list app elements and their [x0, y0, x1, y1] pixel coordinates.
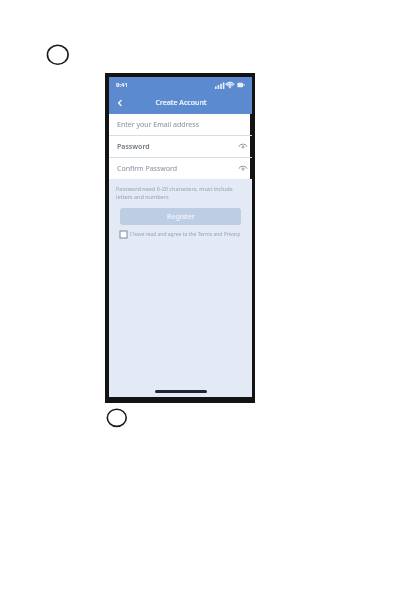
- staticText: 9:41: [116, 81, 128, 89]
- staticText: Confirm Password: [117, 164, 178, 174]
- button[interactable]: Show password: [237, 141, 248, 152]
- button[interactable]: Back: [113, 96, 127, 110]
- staticText: I have read and agree to the Terms and P…: [130, 231, 241, 238]
- staticText: Password: [117, 142, 150, 152]
- button[interactable]: Register: [120, 208, 241, 225]
- staticText: Register: [167, 212, 195, 222]
- button[interactable]: I have read and agree to the Terms and P…: [120, 231, 241, 238]
- button[interactable]: Enter your Email address: [109, 114, 252, 135]
- button[interactable]: Confirm Password: [109, 158, 252, 179]
- staticText: Enter your Email address: [117, 120, 199, 130]
- staticText: Password need 6-20 characters, must incl…: [116, 185, 245, 201]
- button[interactable]: Password: [109, 136, 252, 157]
- button[interactable]: Show password: [237, 163, 248, 174]
- staticText: Create Account: [155, 98, 207, 108]
